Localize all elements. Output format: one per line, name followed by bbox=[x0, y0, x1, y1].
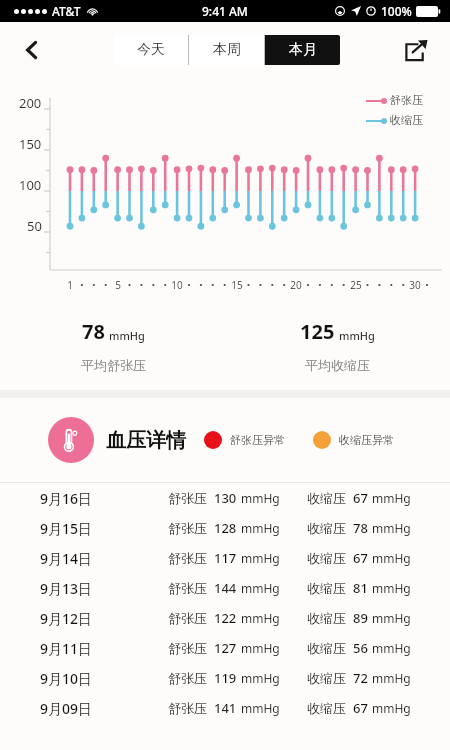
staticText: 119 bbox=[214, 669, 237, 687]
staticText: mmHg bbox=[241, 640, 280, 656]
staticText: 舒张压 bbox=[168, 670, 207, 686]
staticText: 收缩压 bbox=[307, 640, 346, 656]
staticText: 20 bbox=[290, 278, 302, 292]
staticText: 收缩压 bbox=[307, 520, 346, 536]
staticText: 78 bbox=[353, 519, 368, 537]
staticText: 9月16日 bbox=[40, 489, 93, 508]
button[interactable]: 9月13日 bbox=[0, 573, 450, 603]
staticText: 9月15日 bbox=[40, 519, 93, 538]
staticText: mmHg bbox=[241, 520, 280, 536]
staticText: 25 bbox=[350, 278, 362, 292]
staticText: 收缩压 bbox=[307, 580, 346, 596]
staticText: 收缩压 bbox=[390, 113, 423, 127]
staticText: mmHg bbox=[372, 580, 411, 596]
staticText: 9:41 AM bbox=[202, 3, 248, 19]
staticText: 9月11日 bbox=[40, 639, 93, 658]
staticText: 144 bbox=[214, 579, 237, 597]
staticText: 血压详情 bbox=[106, 428, 186, 453]
staticText: mmHg bbox=[241, 700, 280, 716]
staticText: 200 bbox=[19, 94, 42, 112]
staticText: mmHg bbox=[241, 490, 280, 506]
staticText: mmHg bbox=[241, 550, 280, 566]
staticText: mmHg bbox=[372, 640, 411, 656]
staticText: 141 bbox=[214, 699, 237, 717]
staticText: 收缩压 bbox=[307, 670, 346, 686]
staticText: 100% bbox=[381, 3, 412, 19]
staticText: 67 bbox=[353, 699, 368, 717]
button[interactable]: Share bbox=[394, 28, 438, 72]
staticText: 舒张压异常 bbox=[230, 433, 285, 447]
staticText: 舒张压 bbox=[168, 520, 207, 536]
staticText: 本周 bbox=[213, 41, 241, 59]
staticText: mmHg bbox=[372, 490, 411, 506]
staticText: 5 bbox=[115, 278, 121, 292]
staticText: mmHg bbox=[372, 550, 411, 566]
button[interactable]: 9月11日 bbox=[0, 633, 450, 663]
staticText: 舒张压 bbox=[168, 580, 207, 596]
staticText: 128 bbox=[214, 519, 237, 537]
staticText: 81 bbox=[353, 579, 368, 597]
staticText: 127 bbox=[214, 639, 237, 657]
staticText: mmHg bbox=[372, 610, 411, 626]
staticText: 9月13日 bbox=[40, 579, 93, 598]
staticText: 收缩压 bbox=[307, 610, 346, 626]
staticText: 67 bbox=[353, 549, 368, 567]
staticText: 舒张压 bbox=[168, 640, 207, 656]
staticText: 舒张压 bbox=[168, 490, 207, 506]
staticText: mmHg bbox=[241, 580, 280, 596]
staticText: 收缩压 bbox=[307, 490, 346, 506]
staticText: 1 bbox=[67, 278, 73, 292]
staticText: 舒张压 bbox=[390, 93, 423, 107]
staticText: 56 bbox=[353, 639, 368, 657]
staticText: 收缩压 bbox=[307, 550, 346, 566]
staticText: 今天 bbox=[137, 41, 165, 59]
staticText: 78 bbox=[82, 318, 105, 345]
staticText: 89 bbox=[353, 609, 368, 627]
staticText: mmHg bbox=[241, 670, 280, 686]
button[interactable]: 9月12日 bbox=[0, 603, 450, 633]
staticText: mmHg bbox=[372, 700, 411, 716]
staticText: 10 bbox=[171, 278, 183, 292]
button[interactable]: 9月09日 bbox=[0, 693, 450, 723]
button[interactable]: Back bbox=[10, 28, 54, 72]
staticText: 舒张压 bbox=[168, 610, 207, 626]
staticText: mmHg bbox=[109, 328, 145, 343]
staticText: 50 bbox=[27, 217, 42, 235]
staticText: 15 bbox=[231, 278, 243, 292]
staticText: mmHg bbox=[372, 520, 411, 536]
staticText: 125 bbox=[300, 318, 335, 345]
staticText: 9月14日 bbox=[40, 549, 93, 568]
button[interactable]: 今天 bbox=[114, 35, 188, 65]
staticText: 平均收缩压 bbox=[305, 357, 370, 373]
staticText: mmHg bbox=[241, 610, 280, 626]
staticText: 平均舒张压 bbox=[81, 357, 146, 373]
staticText: 67 bbox=[353, 489, 368, 507]
staticText: 本月 bbox=[289, 41, 317, 59]
staticText: 9月09日 bbox=[40, 699, 93, 718]
staticText: 舒张压 bbox=[168, 700, 207, 716]
staticText: 收缩压 bbox=[307, 700, 346, 716]
button[interactable]: 9月15日 bbox=[0, 513, 450, 543]
staticText: 舒张压 bbox=[168, 550, 207, 566]
staticText: mmHg bbox=[372, 670, 411, 686]
staticText: AT&T bbox=[52, 3, 81, 19]
button[interactable]: 9月14日 bbox=[0, 543, 450, 573]
staticText: 30 bbox=[409, 278, 421, 292]
button[interactable]: 本月 bbox=[265, 35, 340, 65]
button[interactable]: 9月10日 bbox=[0, 663, 450, 693]
staticText: 9月10日 bbox=[40, 669, 93, 688]
button[interactable]: 9月16日 bbox=[0, 483, 450, 513]
staticText: 100 bbox=[19, 176, 42, 194]
staticText: 72 bbox=[353, 669, 368, 687]
staticText: 130 bbox=[214, 489, 237, 507]
staticText: 122 bbox=[214, 609, 237, 627]
staticText: 117 bbox=[214, 549, 237, 567]
staticText: mmHg bbox=[339, 328, 375, 343]
staticText: 收缩压异常 bbox=[339, 433, 394, 447]
button[interactable]: 本周 bbox=[189, 35, 264, 65]
staticText: 150 bbox=[19, 135, 42, 153]
staticText: 9月12日 bbox=[40, 609, 93, 628]
